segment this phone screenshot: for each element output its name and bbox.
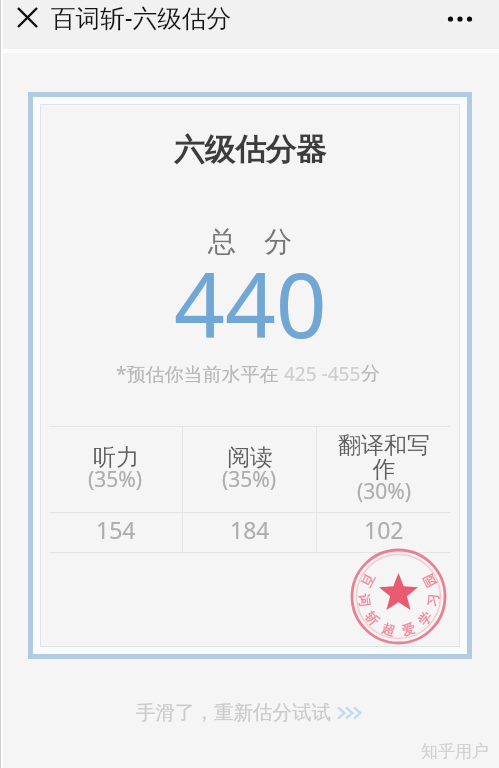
staticText: 听力 <box>93 443 139 472</box>
button[interactable]: More options <box>439 0 481 40</box>
staticText: 440 <box>174 243 327 364</box>
staticText: (35%) <box>88 465 143 494</box>
staticText: (35%) <box>222 465 277 494</box>
staticText: *预估你当前水平在 <box>116 361 284 387</box>
staticText: 百词斩-六级估分 <box>51 1 232 35</box>
staticText: 154 <box>96 514 136 545</box>
staticText: 翻译和写 作 <box>338 431 430 484</box>
staticText: 阅读 <box>227 443 273 472</box>
staticText: 知乎用户 <box>421 741 489 762</box>
staticText: 手滑了，重新估分试试 <box>136 700 331 725</box>
staticText: 184 <box>230 514 270 545</box>
button[interactable]: Close <box>10 0 45 35</box>
staticText: 总 分 <box>208 221 292 259</box>
staticText: 425 -455 <box>284 361 361 387</box>
staticText: (30%) <box>357 477 412 506</box>
staticText: 分 <box>361 362 380 386</box>
staticText: 102 <box>364 514 404 545</box>
staticText: 六级估分器 <box>174 131 327 169</box>
button[interactable]: 手滑了，重新估分试试 <box>136 700 364 725</box>
